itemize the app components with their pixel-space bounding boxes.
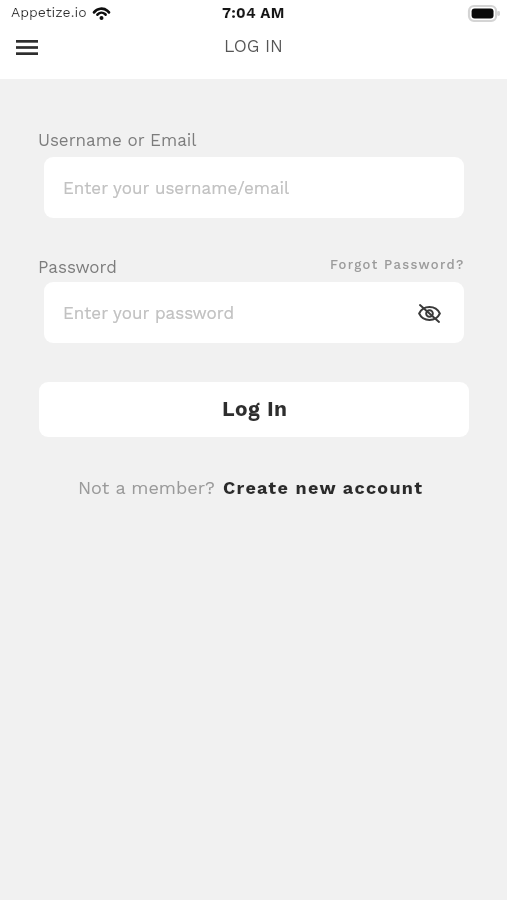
staticText: Appetize.io [11,4,87,20]
staticText: Not a member? [78,477,215,498]
staticText: Password [38,257,117,277]
button[interactable]: Open navigation menu [8,28,46,66]
staticText: Enter your username/email [63,178,290,198]
staticText: Enter your password [63,303,235,323]
button[interactable]: Forgot Password? [330,257,465,272]
button[interactable]: Create new account [223,477,424,498]
staticText: LOG IN [224,36,283,57]
button[interactable]: Show password [415,299,443,327]
staticText: Forgot Password? [330,257,465,272]
staticText: Username or Email [38,130,197,150]
staticText: 7:04 AM [222,4,285,22]
button[interactable]: Log In [39,382,469,437]
button[interactable]: Enter your password [44,282,464,343]
staticText: Log In [222,396,288,421]
button[interactable]: Enter your username/email [44,157,464,218]
staticText: Create new account [223,477,424,498]
